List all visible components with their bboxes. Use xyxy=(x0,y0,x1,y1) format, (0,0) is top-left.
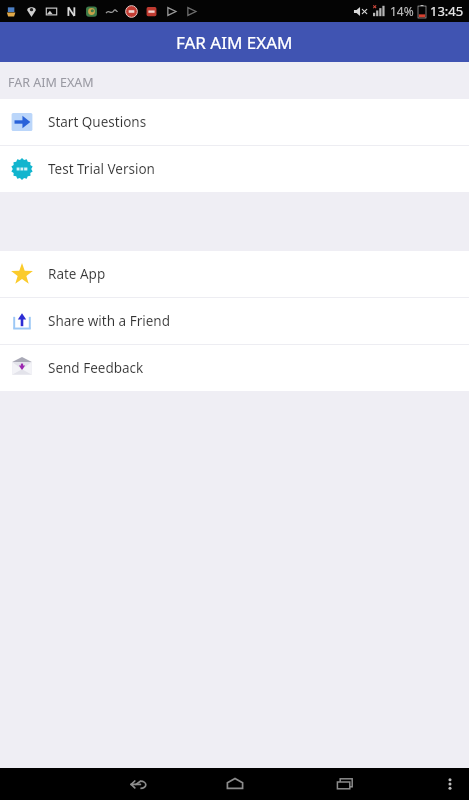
button[interactable]: Start Questions xyxy=(0,99,469,145)
staticText: FAR AIM EXAM xyxy=(176,31,293,54)
button[interactable]: Rate App xyxy=(0,251,469,297)
staticText: FAR AIM EXAM xyxy=(8,74,94,91)
button[interactable]: Test Trial Version xyxy=(0,146,469,192)
staticText: 14% xyxy=(390,3,414,19)
button[interactable]: Recents xyxy=(327,768,363,800)
button[interactable]: Share with a Friend xyxy=(0,298,469,344)
staticText: Start Questions xyxy=(48,113,147,131)
button[interactable]: Back xyxy=(120,768,156,800)
staticText: Send Feedback xyxy=(48,359,144,377)
staticText: 13:45 xyxy=(430,2,464,20)
staticText: Rate App xyxy=(48,265,106,283)
button[interactable]: Home xyxy=(217,768,253,800)
button[interactable]: More options xyxy=(435,769,465,799)
staticText: Test Trial Version xyxy=(48,160,155,178)
staticText: Share with a Friend xyxy=(48,312,170,330)
button[interactable]: Send Feedback xyxy=(0,345,469,391)
